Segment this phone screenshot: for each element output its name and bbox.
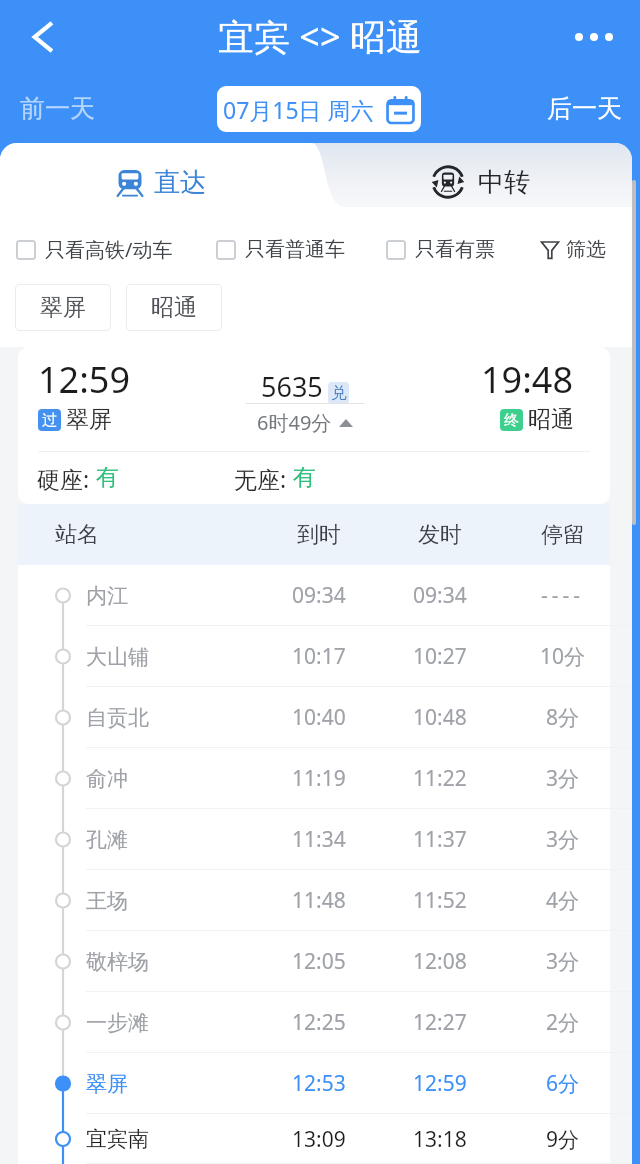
staticText: 12:05 [292,947,346,976]
staticText: 09:34 [413,581,467,610]
button[interactable]: 只看普通车 [216,237,345,262]
staticText: 终 [504,411,519,430]
staticText: 11:52 [413,886,467,915]
staticText: ---- [541,581,585,610]
button[interactable]: 前一天 [12,85,103,132]
staticText: 只看高铁/动车 [45,236,173,263]
staticText: 翠屏 [66,405,112,434]
button[interactable]: 宜宾南 [18,1114,610,1164]
staticText: 3分 [546,947,580,976]
button[interactable]: More options [570,13,618,61]
staticText: 8分 [546,703,580,732]
button[interactable]: 翠屏 [15,284,111,331]
staticText: 中转 [478,166,530,199]
staticText: 宜宾 <> 昭通 [218,12,422,61]
staticText: 11:19 [292,764,346,793]
staticText: 5635 [261,368,323,405]
button[interactable]: 07月15日 周六 [217,86,421,132]
staticText: 12:53 [292,1069,346,1098]
staticText: 10分 [540,642,586,671]
staticText: 07月15日 周六 [223,94,374,125]
button[interactable]: 大山铺 [18,626,610,687]
staticText: 敬梓场 [86,949,149,975]
staticText: 9分 [546,1125,580,1154]
staticText: 前一天 [20,93,95,124]
staticText: 一步滩 [86,1010,149,1036]
button[interactable]: 只看高铁/动车 [16,236,173,263]
staticText: 12:59 [38,355,131,404]
staticText: 有 [293,463,316,492]
staticText: 翠屏 [86,1071,128,1097]
staticText: 俞冲 [86,766,128,792]
staticText: 13:09 [292,1125,346,1154]
staticText: 12:25 [292,1008,346,1037]
staticText: 只看普通车 [245,237,345,262]
staticText: 19:48 [481,355,574,404]
staticText: 11:22 [413,764,467,793]
button[interactable]: Back [19,13,67,61]
staticText: 10:17 [292,642,346,671]
button[interactable]: 中转 [345,143,632,207]
staticText: 硬座: [37,463,96,494]
staticText: 站名 [55,521,99,549]
staticText: 翠屏 [40,293,86,322]
button[interactable]: 直达 [0,143,345,207]
staticText: 11:37 [413,825,467,854]
staticText: 大山铺 [86,644,149,670]
staticText: 后一天 [547,93,622,124]
staticText: 到时 [297,521,341,549]
staticText: 3分 [546,764,580,793]
staticText: 有 [96,463,119,492]
staticText: 孔滩 [86,827,128,853]
staticText: 只看有票 [415,237,495,262]
button[interactable]: 内江 [18,565,610,626]
button[interactable]: 只看有票 [386,237,495,262]
staticText: 10:40 [292,703,346,732]
staticText: 过 [42,411,57,430]
button[interactable]: 孔滩 [18,809,610,870]
staticText: 10:48 [413,703,467,732]
staticText: 4分 [546,886,580,915]
staticText: 宜宾南 [86,1126,149,1152]
button[interactable]: 王场 [18,870,610,931]
button[interactable]: 一步滩 [18,992,610,1053]
staticText: 无座: [234,463,293,494]
button[interactable]: 俞冲 [18,748,610,809]
staticText: 11:48 [292,886,346,915]
staticText: 昭通 [528,405,574,434]
staticText: 10:27 [413,642,467,671]
staticText: 王场 [86,888,128,914]
button[interactable]: 自贡北 [18,687,610,748]
button[interactable]: 筛选 [541,237,606,262]
staticText: 直达 [154,166,206,199]
button[interactable]: 昭通 [126,284,222,331]
staticText: 昭通 [151,293,197,322]
staticText: 13:18 [413,1125,467,1154]
staticText: 3分 [546,825,580,854]
staticText: 12:27 [413,1008,467,1037]
staticText: 12:08 [413,947,467,976]
button[interactable]: 敬梓场 [18,931,610,992]
staticText: 筛选 [566,237,606,262]
staticText: 发时 [418,521,462,549]
button[interactable]: 翠屏 [18,1053,610,1114]
staticText: 停留 [541,521,585,549]
staticText: 11:34 [292,825,346,854]
staticText: 09:34 [292,581,346,610]
staticText: 12:59 [413,1069,467,1098]
staticText: 6分 [546,1069,580,1098]
staticText: 内江 [86,583,128,609]
button[interactable]: 后一天 [539,85,630,132]
staticText: 兑 [331,383,347,403]
staticText: 6时49分 [257,409,332,436]
staticText: 2分 [546,1008,580,1037]
staticText: 自贡北 [86,705,149,731]
